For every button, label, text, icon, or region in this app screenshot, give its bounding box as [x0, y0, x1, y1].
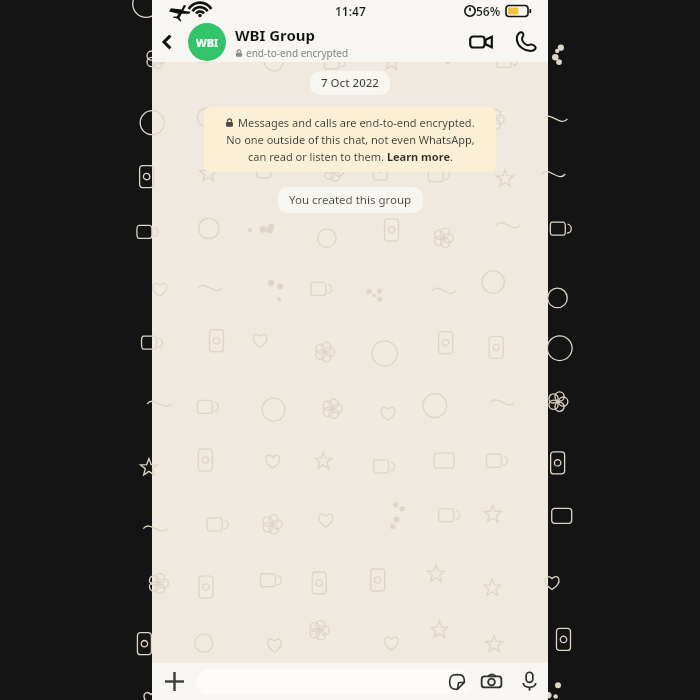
staticText: WBI — [196, 35, 219, 50]
staticText: You created this group — [289, 192, 412, 208]
staticText: 7 Oct 2022 — [321, 75, 379, 91]
button[interactable]: Stickers — [445, 670, 469, 694]
button[interactable]: Voice message — [510, 663, 548, 700]
button[interactable]: Messages and calls are end-to-end encryp… — [204, 107, 496, 172]
staticText: Messages and calls are end-to-end encryp… — [238, 115, 475, 130]
button[interactable]: Camera — [472, 663, 510, 700]
staticText: can read or listen to them. Learn more. — [248, 149, 453, 164]
button[interactable]: Video call — [458, 22, 504, 62]
staticText: WBI Group — [235, 25, 316, 45]
button[interactable]: WBI — [184, 22, 458, 62]
staticText: end-to-end encrypted — [246, 46, 349, 60]
staticText: 11:47 — [335, 3, 366, 19]
button[interactable]: Back — [152, 22, 184, 62]
button[interactable]: Voice call — [504, 22, 548, 62]
staticText: No one outside of this chat, not even Wh… — [226, 132, 475, 147]
staticText: 56% — [476, 3, 501, 19]
button[interactable]: Stickers — [196, 669, 472, 695]
button[interactable]: You created this group — [278, 187, 423, 213]
button[interactable]: Attach — [152, 663, 196, 700]
button[interactable]: 7 Oct 2022 — [310, 71, 390, 95]
